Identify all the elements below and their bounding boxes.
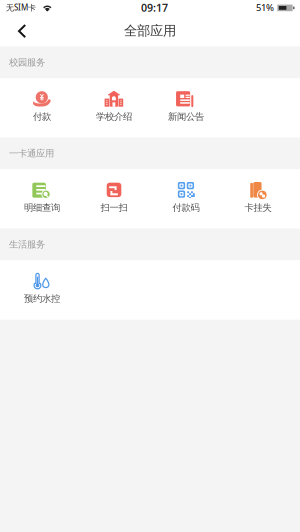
button[interactable]: 付款码: [150, 169, 222, 229]
button[interactable]: 预约水控: [6, 260, 78, 320]
staticText: 卡挂失: [244, 202, 271, 213]
button[interactable]: 新闻公告: [150, 78, 222, 138]
staticText: 无SIM卡: [6, 2, 36, 13]
button[interactable]: 付款: [6, 78, 78, 138]
staticText: 51%: [256, 1, 274, 14]
button[interactable]: 返回: [8, 18, 34, 44]
staticText: 明细查询: [24, 202, 60, 213]
staticText: 生活服务: [9, 239, 45, 250]
button[interactable]: 扫一扫: [78, 169, 150, 229]
staticText: 校园服务: [9, 57, 45, 68]
staticText: 付款: [33, 111, 51, 122]
button[interactable]: 卡挂失: [222, 169, 294, 229]
staticText: 预约水控: [24, 293, 60, 304]
staticText: 09:17: [141, 0, 168, 15]
staticText: 全部应用: [124, 23, 176, 39]
staticText: 付款码: [172, 202, 199, 213]
staticText: 扫一扫: [100, 202, 127, 213]
staticText: 新闻公告: [168, 111, 204, 122]
button[interactable]: 明细查询: [6, 169, 78, 229]
staticText: 一卡通应用: [9, 148, 54, 159]
button[interactable]: 学校介绍: [78, 78, 150, 138]
staticText: 学校介绍: [96, 111, 132, 122]
